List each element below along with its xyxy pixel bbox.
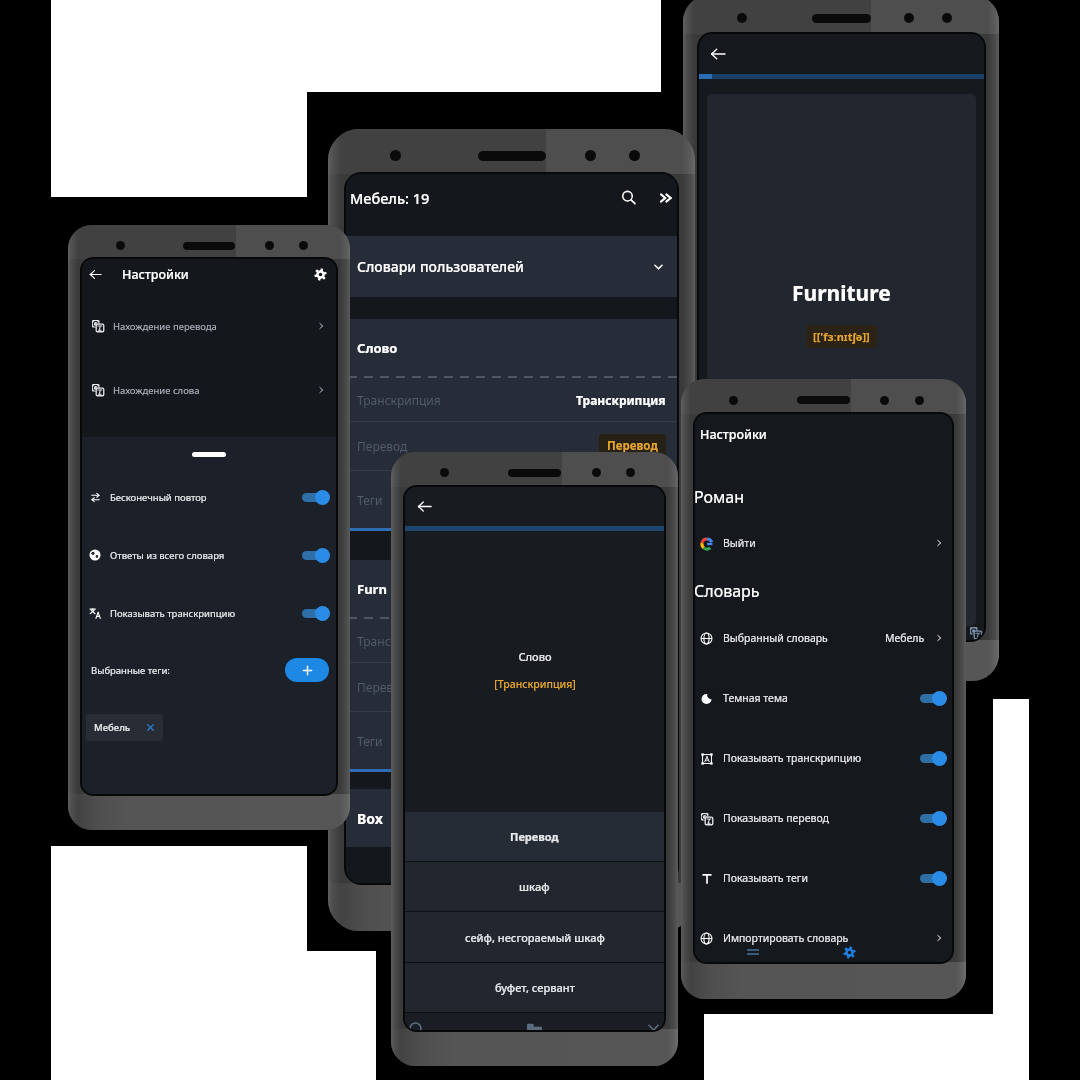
staticText: Бесконечный повтор (110, 491, 207, 504)
staticText: Словарь (695, 580, 760, 602)
other: Поиск (620, 189, 637, 206)
staticText: [Транскрипция] (494, 677, 576, 691)
staticText: Показывать транскрипцию (723, 751, 862, 765)
button[interactable]: Показывать транскрипцию (695, 748, 952, 768)
staticText: Box (357, 809, 383, 828)
button[interactable]: Бесконечный повтор (82, 488, 336, 506)
staticText: Показывать транскрипцию (110, 607, 235, 620)
staticText: Перевод (510, 829, 559, 844)
staticText: Транскрипция (576, 392, 666, 408)
other: Перевод (970, 627, 982, 639)
staticText: Слово (518, 649, 552, 664)
button[interactable]: Ответы из всего словаря (82, 546, 336, 564)
button[interactable]: Добавить тег (285, 658, 329, 682)
staticText: Нахождение перевода (113, 320, 217, 333)
button[interactable]: Показывать транскрипцию (82, 604, 336, 622)
button[interactable]: Показывать теги (695, 868, 952, 888)
other: Удалить (146, 723, 155, 732)
staticText: Показывать теги (723, 871, 808, 885)
other: Назад (89, 268, 102, 281)
button[interactable]: буфет, сервант (405, 963, 664, 1012)
button[interactable]: Импортировать словарь (695, 927, 952, 949)
staticText: Настройки (122, 266, 189, 283)
button[interactable]: сейф, несгораемый шкаф (405, 912, 664, 962)
staticText: Нахождение слова (113, 384, 200, 397)
staticText: Выйти (723, 536, 756, 550)
staticText: Мебель (885, 631, 925, 645)
staticText: Furn (357, 580, 387, 598)
staticText: Слово (357, 339, 398, 357)
staticText: Мебель (94, 721, 131, 734)
button[interactable]: Показывать перевод (695, 808, 952, 828)
staticText: шкаф (519, 879, 550, 894)
button[interactable]: Словари пользователей (346, 236, 677, 297)
staticText: Выбранный словарь (723, 631, 828, 645)
other: Настройки (314, 268, 327, 281)
button[interactable]: Темная тема (695, 688, 952, 708)
staticText: Перевод (357, 438, 408, 454)
other: Далее (657, 189, 675, 207)
staticText: [['fɜːnɪtʃə]] (813, 329, 870, 344)
staticText: Транскрипция (357, 633, 441, 649)
staticText: Роман (695, 486, 745, 508)
staticText: Транскрипция (357, 392, 441, 408)
staticText: Теги (357, 733, 383, 749)
button[interactable]: Нахождение слова (82, 379, 336, 401)
staticText: Выбранные теги: (91, 664, 170, 677)
staticText: сейф, несгораемый шкаф (465, 930, 605, 945)
staticText: Темная тема (723, 691, 788, 705)
button[interactable]: Выйти (695, 532, 952, 554)
other: Настройки (843, 946, 856, 959)
staticText: Перевод (357, 679, 408, 695)
button[interactable]: Мебель (86, 714, 163, 741)
staticText: Импортировать словарь (723, 931, 849, 945)
other: Назад (710, 46, 726, 62)
staticText: Мебель: 19 (350, 188, 430, 208)
staticText: Перевод (607, 438, 658, 454)
button[interactable]: Нахождение перевода (82, 315, 336, 337)
staticText: Показывать перевод (723, 811, 829, 825)
staticText: буфет, сервант (495, 980, 575, 995)
staticText: Ответы из всего словаря (110, 549, 225, 562)
other: Назад (417, 499, 432, 514)
staticText: Настройки (700, 426, 767, 443)
button[interactable]: шкаф (405, 862, 664, 911)
staticText: Furniture (792, 279, 891, 308)
button[interactable]: Перевод (405, 812, 664, 861)
button[interactable]: Выбранный словарь (695, 627, 952, 649)
staticText: Словари пользователей (357, 257, 524, 276)
staticText: Теги (357, 492, 383, 508)
